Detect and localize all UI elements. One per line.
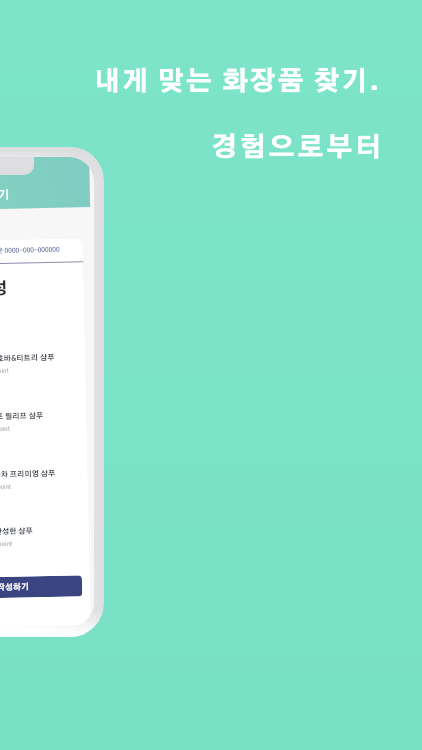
button[interactable]: 려 자양윤모 진생보 흑운차 프리미엄 샴푸 bbox=[0, 469, 88, 492]
staticText: 려 자양윤모 진생보 흑운차 프리미엄 샴푸 bbox=[0, 470, 56, 480]
staticText: 내 피부 특성 bbox=[0, 281, 8, 299]
staticText: 샴푸 · 모발두피케어 · 1,000 point bbox=[0, 426, 11, 434]
staticText: 샴푸 · 모발두피케어 · 1,000 point bbox=[0, 368, 10, 376]
staticText: 아로마티카 퓨리파잉 호호바&티트리 샴푸 bbox=[0, 354, 55, 364]
button[interactable]: 리뷰 작성하기 bbox=[0, 575, 82, 600]
staticText: 닥터포헤어 폴리젠스칼프 릴리프 샴푸 bbox=[0, 412, 44, 422]
button[interactable]: 아비브 어성초 진정 약산성한 샴푸 bbox=[0, 526, 89, 549]
staticText: 리뷰 작성하기 bbox=[0, 583, 29, 592]
staticText: 경험으로부터 bbox=[211, 135, 384, 161]
staticText: 아비브 어성초 진정 약산성한 샴푸 bbox=[0, 527, 33, 537]
staticText: CJ대한통운 0000-000-000000 bbox=[0, 247, 60, 256]
staticText: 샴푸 · 모발두피케어 · 1,000 point bbox=[0, 541, 13, 549]
staticText: 샴푸 · 모발두피케어 · 1,000 point bbox=[0, 484, 12, 492]
button[interactable]: 아로마티카 퓨리파잉 호호바&티트리 샴푸 bbox=[0, 353, 86, 376]
staticText: 맞춤 화장품 찾기 bbox=[0, 189, 10, 202]
button[interactable]: 닥터포헤어 폴리젠스칼프 릴리프 샴푸 bbox=[0, 411, 87, 434]
staticText: 내게 맞는 화장품 찾기. bbox=[94, 69, 381, 95]
